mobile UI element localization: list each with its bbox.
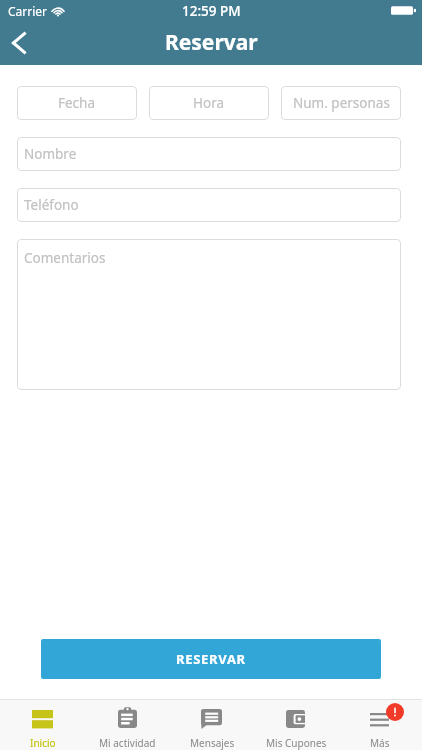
staticText: 12:59 PM — [182, 2, 241, 20]
button[interactable]: Inicio — [0, 700, 85, 750]
button[interactable]: Back — [0, 21, 44, 65]
staticText: Comentarios — [24, 249, 106, 267]
staticText: RESERVAR — [176, 650, 246, 668]
staticText: Mi actividad — [99, 736, 156, 750]
button[interactable]: Num. personas — [281, 86, 401, 120]
button[interactable]: Fecha — [17, 86, 137, 120]
staticText: Carrier — [8, 3, 48, 19]
staticText: Hora — [193, 94, 225, 112]
button[interactable]: Más — [338, 700, 422, 750]
button[interactable]: Mi actividad — [85, 700, 170, 750]
staticText: Más — [370, 736, 390, 750]
staticText: Mensajes — [190, 736, 235, 750]
staticText: Mis Cupones — [266, 736, 327, 750]
staticText: Inicio — [30, 736, 56, 750]
button[interactable]: Mensajes — [170, 700, 254, 750]
staticText: Num. personas — [293, 94, 390, 112]
button[interactable]: Mis Cupones — [254, 700, 338, 750]
button[interactable]: Nombre — [17, 137, 401, 171]
button[interactable]: Hora — [149, 86, 269, 120]
button[interactable]: Teléfono — [17, 188, 401, 222]
staticText: Fecha — [58, 94, 96, 112]
button[interactable]: Comentarios — [17, 239, 401, 390]
button[interactable]: RESERVAR — [41, 639, 381, 679]
staticText: Reservar — [165, 28, 258, 57]
staticText: Nombre — [24, 145, 77, 163]
staticText: Teléfono — [24, 196, 79, 214]
